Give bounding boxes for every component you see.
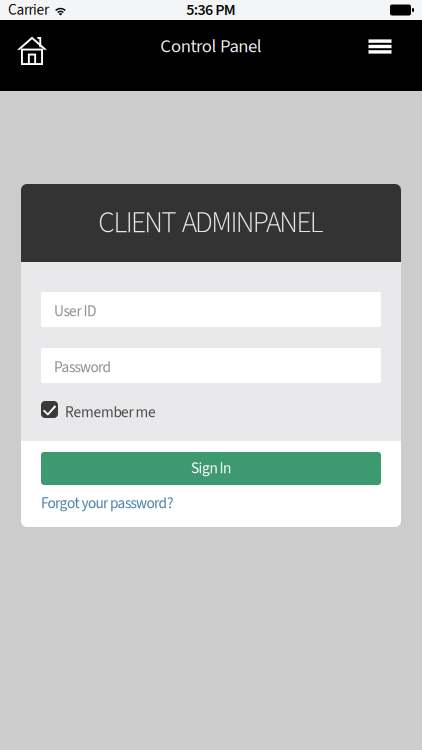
button[interactable]: Remember me — [41, 401, 381, 418]
staticText: Remember me — [65, 402, 156, 423]
staticText: Forgot your password? — [41, 493, 174, 514]
button[interactable]: Sign In — [41, 452, 381, 485]
staticText: User ID — [54, 301, 96, 322]
staticText: Password — [54, 357, 111, 378]
staticText: 5:36 PM — [186, 0, 236, 21]
staticText: Sign In — [191, 458, 231, 479]
staticText: CLIENT — [98, 202, 176, 244]
button[interactable]: Home — [8, 20, 56, 73]
staticText: ADMINPANEL — [182, 202, 324, 244]
button[interactable]: Forgot your password? — [41, 493, 381, 514]
staticText: Control Panel — [160, 33, 262, 60]
button[interactable]: Menu — [356, 20, 404, 73]
staticText: Carrier — [8, 0, 49, 21]
